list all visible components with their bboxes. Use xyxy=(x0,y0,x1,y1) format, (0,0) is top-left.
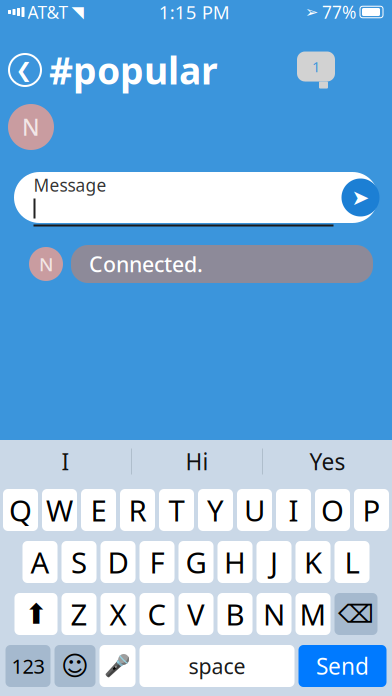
button[interactable]: Yes xyxy=(263,440,392,483)
staticText: AT&T xyxy=(27,0,68,23)
button[interactable]: Q xyxy=(3,489,38,531)
button[interactable]: Dictation xyxy=(99,645,135,687)
button[interactable]: Delete xyxy=(334,593,377,635)
staticText: space xyxy=(188,652,245,680)
button[interactable]: P xyxy=(354,489,389,531)
button[interactable]: E xyxy=(81,489,116,531)
staticText: Z xyxy=(70,594,87,633)
button[interactable]: D xyxy=(100,541,135,583)
button[interactable]: Z xyxy=(61,593,96,635)
staticText: ➤ xyxy=(351,185,369,210)
staticText: D xyxy=(107,542,128,581)
staticText: S xyxy=(71,542,87,581)
button[interactable]: H xyxy=(217,541,252,583)
staticText: H xyxy=(224,542,246,581)
button[interactable]: O xyxy=(315,489,350,531)
staticText: Y xyxy=(207,490,224,529)
staticText: L xyxy=(344,542,359,581)
button[interactable]: T xyxy=(159,489,194,531)
staticText: #popular xyxy=(49,45,218,95)
button[interactable]: V xyxy=(178,593,213,635)
staticText: B xyxy=(225,594,244,633)
staticText: K xyxy=(304,542,322,581)
staticText: U xyxy=(244,490,265,529)
button[interactable]: Shift xyxy=(14,593,57,635)
button[interactable]: S xyxy=(61,541,96,583)
staticText: ☺ xyxy=(61,651,89,681)
staticText: I xyxy=(61,446,69,476)
staticText: N xyxy=(39,252,53,276)
staticText: W xyxy=(46,490,73,529)
button[interactable]: space xyxy=(139,645,294,687)
staticText: ➢ xyxy=(305,3,318,21)
staticText: Connected. xyxy=(89,250,203,278)
button[interactable]: Numbers xyxy=(5,645,50,687)
staticText: 🎤 xyxy=(104,654,131,678)
staticText: ⌫ xyxy=(338,600,374,628)
staticText: 77% xyxy=(322,0,356,23)
button[interactable]: B xyxy=(217,593,252,635)
button[interactable]: Y xyxy=(198,489,233,531)
staticText: ❮ xyxy=(15,59,32,81)
staticText: G xyxy=(185,542,206,581)
staticText: Message xyxy=(33,173,106,196)
staticText: O xyxy=(321,490,344,529)
button[interactable]: I xyxy=(276,489,311,531)
button[interactable]: Messages xyxy=(290,48,342,92)
staticText: A xyxy=(30,542,49,581)
button[interactable]: Hi xyxy=(132,440,262,483)
button[interactable]: N xyxy=(256,593,291,635)
staticText: V xyxy=(187,594,205,633)
button[interactable]: I xyxy=(0,440,131,483)
staticText: I xyxy=(288,490,298,529)
button[interactable]: C xyxy=(139,593,174,635)
button[interactable]: X xyxy=(100,593,135,635)
button[interactable]: G xyxy=(178,541,213,583)
button[interactable]: Send message xyxy=(341,178,379,216)
staticText: Q xyxy=(9,490,32,529)
staticText: R xyxy=(128,490,146,529)
staticText: Hi xyxy=(185,446,208,476)
button[interactable]: R xyxy=(120,489,155,531)
button[interactable]: A xyxy=(22,541,57,583)
staticText: J xyxy=(270,542,278,581)
button[interactable]: K xyxy=(295,541,330,583)
staticText: ⬆ xyxy=(24,598,47,630)
button[interactable]: M xyxy=(295,593,330,635)
button[interactable]: Back xyxy=(6,51,44,89)
staticText: E xyxy=(90,490,106,529)
staticText: Yes xyxy=(309,446,345,476)
button[interactable]: Emoji xyxy=(54,645,95,687)
staticText: 123 xyxy=(11,653,44,679)
staticText: F xyxy=(149,542,164,581)
button[interactable]: F xyxy=(139,541,174,583)
staticText: N xyxy=(263,594,285,633)
staticText: T xyxy=(168,490,184,529)
staticText: M xyxy=(299,594,326,633)
staticText: C xyxy=(147,594,166,633)
button[interactable]: L xyxy=(334,541,369,583)
staticText: 1 xyxy=(312,57,320,76)
staticText: P xyxy=(362,490,380,529)
staticText: 1:15 PM xyxy=(159,0,230,24)
staticText: Send xyxy=(316,651,369,681)
button[interactable]: J xyxy=(256,541,291,583)
button[interactable]: Send xyxy=(298,645,386,687)
staticText: ◥ xyxy=(71,3,83,21)
staticText: X xyxy=(109,594,126,633)
staticText: N xyxy=(22,112,40,142)
button[interactable]: U xyxy=(237,489,272,531)
button[interactable]: W xyxy=(42,489,77,531)
